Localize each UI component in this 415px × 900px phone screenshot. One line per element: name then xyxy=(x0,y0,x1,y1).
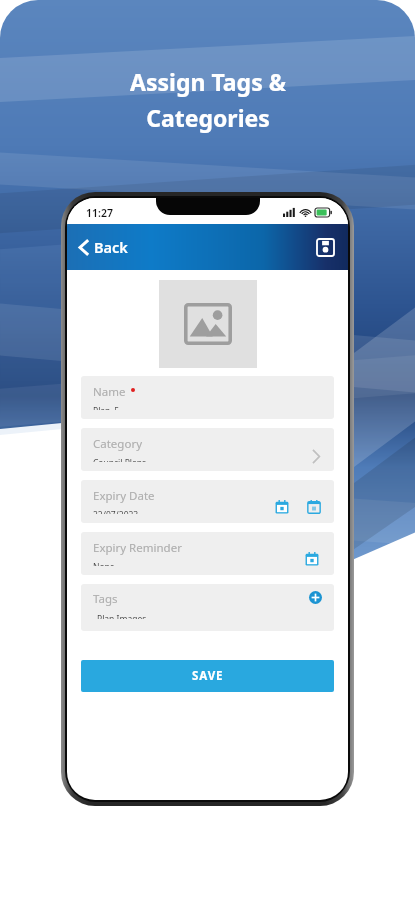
staticText: Plan Images xyxy=(97,613,147,619)
button[interactable]: Category xyxy=(81,428,334,471)
staticText: 22/07/2023 xyxy=(93,509,139,514)
staticText: Assign Tags & xyxy=(130,66,286,97)
button[interactable]: Set reminder xyxy=(303,550,321,568)
button[interactable]: Add tag xyxy=(308,590,323,605)
staticText: Back xyxy=(94,237,128,257)
staticText: 11:27 xyxy=(86,206,113,220)
staticText: Category xyxy=(93,436,143,452)
staticText: Categories xyxy=(146,102,270,133)
staticText: Expiry Reminder xyxy=(93,540,182,556)
button[interactable]: Back xyxy=(67,231,138,263)
staticText: Council Plans xyxy=(93,457,147,462)
button[interactable]: Add photo xyxy=(159,280,257,368)
staticText: Name xyxy=(93,384,126,400)
staticText: Tags xyxy=(93,591,118,607)
button[interactable]: Pick date xyxy=(273,498,291,516)
button[interactable]: Clear date xyxy=(305,498,323,516)
button[interactable]: SAVE xyxy=(81,660,334,692)
button[interactable]: Save xyxy=(303,229,348,266)
staticText: Expiry Date xyxy=(93,488,155,504)
staticText: Plan_5 xyxy=(93,405,119,410)
staticText: SAVE xyxy=(192,668,224,684)
staticText: None xyxy=(93,561,115,566)
